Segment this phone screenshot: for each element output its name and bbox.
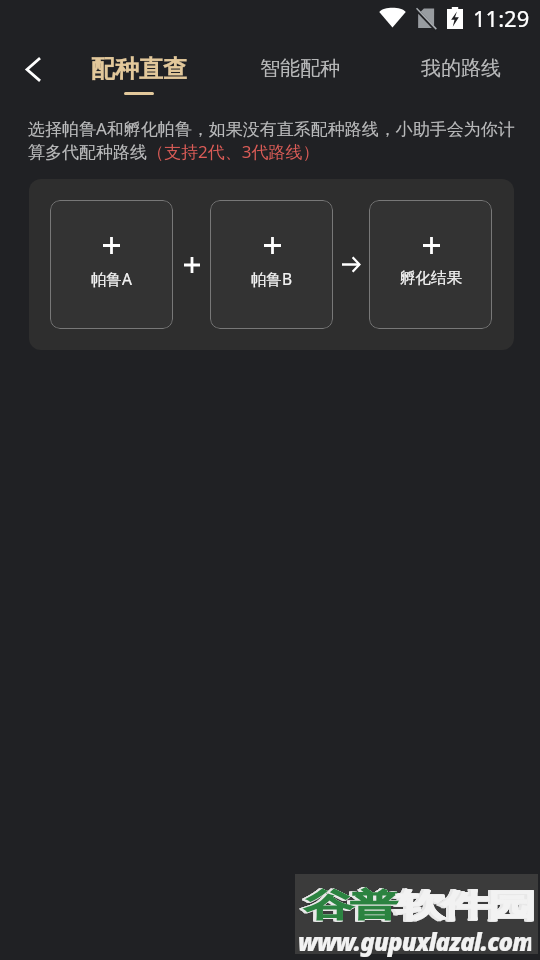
staticText: 谷普软件园 bbox=[303, 886, 532, 925]
button[interactable]: 智能配种 bbox=[249, 35, 351, 98]
staticText: 配种直查 bbox=[91, 54, 187, 84]
staticText: 11:29 bbox=[473, 3, 530, 33]
button[interactable]: 帕鲁B bbox=[210, 200, 333, 329]
staticText: 谷普软件园 bbox=[304, 885, 534, 924]
button[interactable]: 孵化结果 bbox=[369, 200, 492, 329]
staticText: 帕鲁B bbox=[251, 268, 293, 289]
staticText: 谷普软件园 bbox=[303, 887, 532, 926]
button[interactable]: 我的路线 bbox=[410, 35, 512, 98]
staticText: 谷普软件园 bbox=[303, 885, 532, 924]
staticText: 谷普软件园 bbox=[305, 887, 535, 926]
staticText: 谷普软件园 bbox=[304, 887, 534, 926]
staticText: 谷普软件园 bbox=[305, 886, 535, 925]
staticText: 选择帕鲁A和孵化帕鲁，如果没有直系配种路线，小助手会为你计算多代配种路线（支持2… bbox=[28, 117, 516, 163]
staticText: 孵化结果 bbox=[400, 268, 462, 288]
staticText: 智能配种 bbox=[260, 56, 340, 81]
staticText: www.gupuxlazal.com bbox=[298, 924, 531, 958]
staticText: 谷普软件园 bbox=[305, 885, 535, 924]
button[interactable]: Back bbox=[11, 47, 55, 91]
staticText: 我的路线 bbox=[421, 56, 501, 81]
button[interactable]: 帕鲁A bbox=[50, 200, 173, 329]
button[interactable]: 配种直查 bbox=[88, 35, 189, 98]
staticText: 谷普软件园 bbox=[304, 886, 534, 925]
staticText: 帕鲁A bbox=[91, 268, 132, 289]
